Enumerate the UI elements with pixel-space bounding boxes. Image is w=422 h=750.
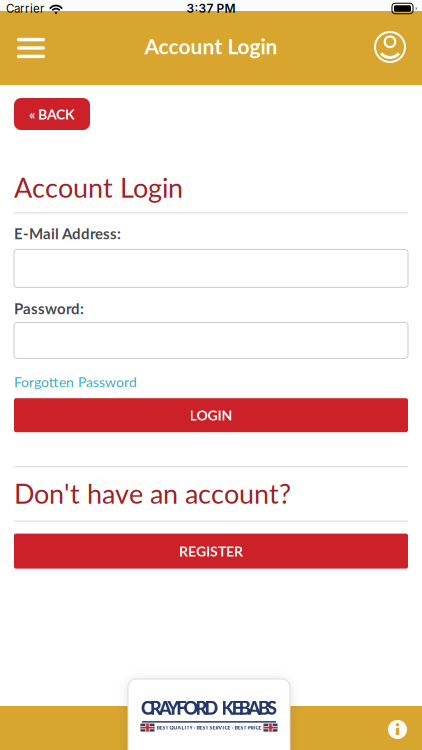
staticText: Forgotten Password [14,373,137,390]
button[interactable]: « BACK [14,98,90,130]
staticText: « BACK [29,106,75,122]
staticText: Account Login [14,171,183,203]
button[interactable]: Forgotten Password [14,373,137,390]
staticText: 3:37 PM [186,1,235,16]
staticText: Account Login [144,33,277,59]
staticText: CRAYFORD [141,697,219,719]
button[interactable]: Account [374,31,422,63]
staticText: BEST QUALITY - BEST SERVICE - BEST PRICE [156,725,261,731]
staticText: Don't have an account? [14,477,291,510]
staticText: Carrier [6,1,44,15]
button[interactable]: Menu [0,37,45,57]
button[interactable]: LOGIN [14,398,408,432]
staticText: LOGIN [189,407,232,424]
staticText: Password: [14,299,84,317]
staticText: KEBABS [222,697,277,719]
button[interactable]: Info [388,720,407,739]
staticText: E-Mail Address: [14,224,121,242]
staticText: REGISTER [179,543,243,559]
button[interactable]: REGISTER [14,534,408,569]
